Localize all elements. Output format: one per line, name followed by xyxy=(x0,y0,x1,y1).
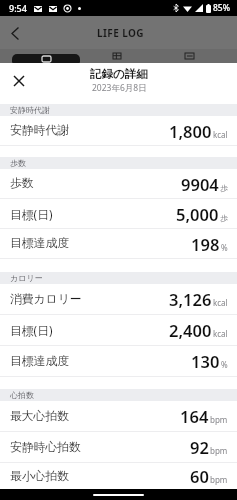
button[interactable]: Records tab xyxy=(12,54,80,63)
staticText: 目標達成度 xyxy=(10,354,69,369)
staticText: 歩数 xyxy=(10,176,34,191)
button[interactable]: 最小心拍数 xyxy=(0,463,237,489)
staticText: % xyxy=(221,359,228,370)
button[interactable]: 歩数 xyxy=(0,169,237,198)
button[interactable]: 安静時心拍数 xyxy=(0,432,237,462)
staticText: 安静時代謝 xyxy=(10,105,50,115)
button[interactable]: 目標(日) xyxy=(0,315,237,345)
staticText: 3,126 xyxy=(169,288,212,310)
staticText: 最小心拍数 xyxy=(10,469,69,484)
button[interactable]: 目標達成度 xyxy=(0,346,237,376)
staticText: % xyxy=(221,242,228,253)
staticText: 198 xyxy=(191,233,220,255)
staticText: 92 xyxy=(190,436,209,458)
staticText: bpm xyxy=(210,414,228,425)
staticText: 記録の詳細 xyxy=(90,67,148,81)
staticText: 164 xyxy=(180,405,209,427)
staticText: 9:54 xyxy=(9,2,27,14)
staticText: 9904 xyxy=(181,173,219,195)
staticText: kcal xyxy=(213,129,228,140)
staticText: kcal xyxy=(213,328,228,339)
button[interactable]: Close xyxy=(7,69,31,93)
button[interactable]: 最大心拍数 xyxy=(0,401,237,431)
button[interactable]: 消費カロリー xyxy=(0,284,237,314)
button[interactable]: List tab xyxy=(180,51,199,61)
staticText: 最大心拍数 xyxy=(10,409,69,424)
button[interactable]: Chart tab xyxy=(107,51,126,61)
staticText: kcal xyxy=(213,297,228,308)
staticText: bpm xyxy=(210,474,228,485)
staticText: カロリー xyxy=(10,273,43,283)
staticText: 目標(日) xyxy=(10,322,53,338)
staticText: 85% xyxy=(213,2,230,14)
staticText: 2,400 xyxy=(169,319,212,341)
staticText: 5,000 xyxy=(176,203,219,225)
staticText: 1,800 xyxy=(169,120,212,142)
staticText: bpm xyxy=(210,445,228,456)
staticText: 60 xyxy=(190,465,209,487)
staticText: 歩 xyxy=(220,213,228,223)
staticText: 目標(日) xyxy=(10,206,53,222)
button[interactable]: 目標達成度 xyxy=(0,229,237,258)
staticText: LIFE LOG xyxy=(97,26,144,40)
button[interactable]: Back xyxy=(0,18,30,48)
staticText: 130 xyxy=(191,350,220,372)
staticText: 心拍数 xyxy=(10,390,34,400)
button[interactable]: 目標(日) xyxy=(0,199,237,228)
button[interactable]: 安静時代謝 xyxy=(0,116,237,145)
staticText: 2023年6月8日 xyxy=(92,82,147,94)
staticText: 安静時心拍数 xyxy=(10,440,81,455)
staticText: 目標達成度 xyxy=(10,236,69,251)
staticText: 消費カロリー xyxy=(10,292,82,307)
staticText: 歩数 xyxy=(10,158,26,168)
staticText: 歩 xyxy=(220,183,228,193)
staticText: 安静時代謝 xyxy=(10,123,69,138)
